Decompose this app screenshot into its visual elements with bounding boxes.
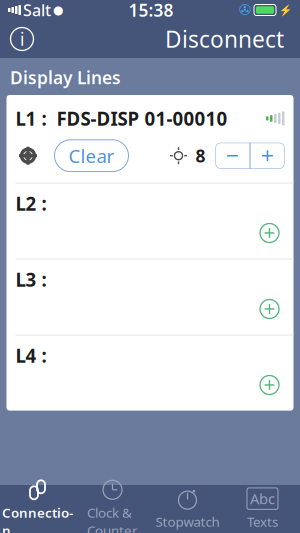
button[interactable]: Clear: [54, 140, 128, 172]
staticText: 8: [195, 144, 205, 167]
staticText: 15:38: [128, 0, 173, 21]
staticText: L4 :: [15, 343, 46, 368]
staticText: Display Lines: [10, 66, 121, 89]
button[interactable]: Add text to L4 :: [254, 370, 284, 400]
button[interactable]: Clock & Counter: [75, 485, 150, 533]
staticText: ●: [53, 3, 63, 17]
button[interactable]: Abc: [225, 485, 300, 533]
staticText: Salt: [23, 0, 51, 21]
button[interactable]: Line settings: [15, 142, 40, 169]
staticText: Disconnect: [165, 24, 284, 54]
staticText: Connection: [2, 504, 73, 533]
staticText: L3 :: [15, 267, 46, 292]
staticText: ⚡: [279, 4, 292, 16]
button[interactable]: Increase brightness: [250, 143, 284, 169]
button[interactable]: Add text to L2 :: [254, 218, 284, 248]
staticText: Stopwatch: [155, 513, 219, 530]
staticText: i: [20, 27, 24, 50]
staticText: Abc: [250, 489, 275, 508]
button[interactable]: Info: [0, 20, 44, 58]
staticText: Clear: [68, 143, 114, 168]
staticText: L1 : FDS-DISP 01-00010: [15, 106, 227, 131]
staticText: Texts: [247, 513, 278, 530]
staticText: ✇: [239, 2, 251, 18]
button[interactable]: Connection: [0, 485, 75, 533]
button[interactable]: Add text to L3 :: [254, 294, 284, 324]
button[interactable]: Disconnect: [155, 20, 294, 58]
staticText: L2 :: [15, 191, 46, 216]
button[interactable]: Decrease brightness: [215, 143, 249, 169]
button[interactable]: Stopwatch: [150, 485, 225, 533]
staticText: Clock & Counter: [87, 504, 138, 533]
